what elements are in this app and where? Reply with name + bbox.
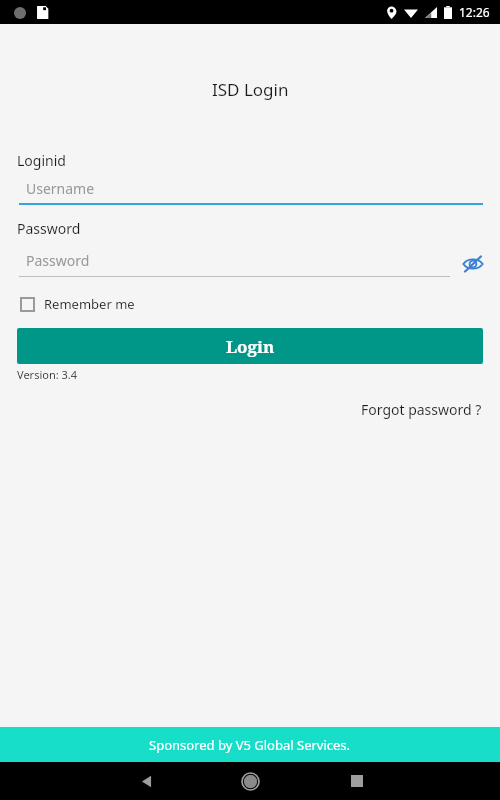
staticText: Forgot password ? — [361, 400, 482, 419]
button[interactable]: Recent apps — [339, 763, 375, 799]
button[interactable]: Sponsored by V5 Global Services. — [0, 727, 500, 762]
staticText: 12:26 — [459, 4, 490, 20]
staticText: Loginid — [17, 151, 66, 170]
button[interactable]: Password — [19, 251, 450, 277]
staticText: Remember me — [44, 295, 135, 313]
staticText: Sponsored by V5 Global Services. — [149, 736, 351, 754]
staticText: Username — [26, 179, 95, 198]
button[interactable]: Login — [17, 328, 483, 364]
staticText: Login — [226, 335, 275, 358]
staticText: Password — [17, 219, 81, 238]
button[interactable]: Home — [232, 763, 268, 799]
button[interactable]: Username — [19, 179, 483, 205]
button[interactable]: Show password — [456, 247, 490, 281]
button[interactable]: Forgot password ? — [343, 396, 500, 423]
staticText: Password — [26, 251, 90, 270]
staticText: ISD Login — [212, 78, 289, 101]
button[interactable]: Back — [128, 763, 164, 799]
staticText: Version: 3.4 — [17, 367, 78, 382]
button[interactable]: Remember me — [20, 293, 143, 315]
